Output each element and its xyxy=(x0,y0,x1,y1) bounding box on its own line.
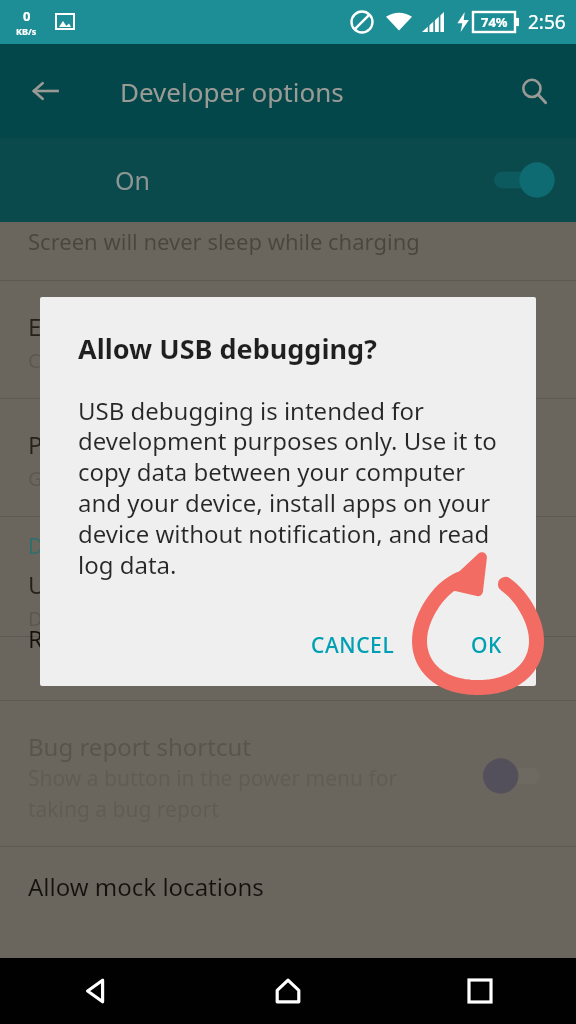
button[interactable]: Home xyxy=(192,958,384,1024)
staticText: Revoke USB debugging authorizations xyxy=(28,622,461,655)
staticText: Show a button in the power menu for taki… xyxy=(28,764,398,823)
staticText: 0 xyxy=(23,7,31,25)
staticText: Geeky stats about running processes xyxy=(28,465,376,492)
staticText: Developer options xyxy=(120,74,344,109)
button[interactable]: Recent apps xyxy=(384,958,576,1024)
button[interactable]: OK xyxy=(455,619,518,672)
staticText: Bug report shortcut xyxy=(28,730,251,763)
staticText: Screen will never sleep while charging xyxy=(28,226,420,256)
staticText: 2:56 xyxy=(528,9,566,35)
staticText: Enable Bluetooth HCI snoop log xyxy=(28,310,388,343)
staticText: 74% xyxy=(481,13,508,31)
button[interactable]: Search xyxy=(510,67,558,115)
staticText: USB debugging xyxy=(28,568,204,601)
staticText: Allow mock locations xyxy=(28,870,264,903)
staticText: KB/s xyxy=(16,25,37,37)
staticText: On xyxy=(115,163,150,197)
staticText: Capture all bluetooth HCI packets in a f… xyxy=(28,347,417,374)
staticText: OK xyxy=(471,631,502,660)
staticText: Process Stats xyxy=(28,428,177,461)
staticText: USB debugging is intended for developmen… xyxy=(78,394,506,581)
button[interactable]: CANCEL xyxy=(295,619,411,672)
staticText: CANCEL xyxy=(311,631,395,660)
staticText: Allow USB debugging? xyxy=(78,330,377,367)
button[interactable]: Back xyxy=(0,958,192,1024)
staticText: Debug xyxy=(28,532,94,561)
button[interactable]: Navigate up xyxy=(22,67,70,115)
staticText: Debug mode when USB is connected xyxy=(28,605,375,632)
